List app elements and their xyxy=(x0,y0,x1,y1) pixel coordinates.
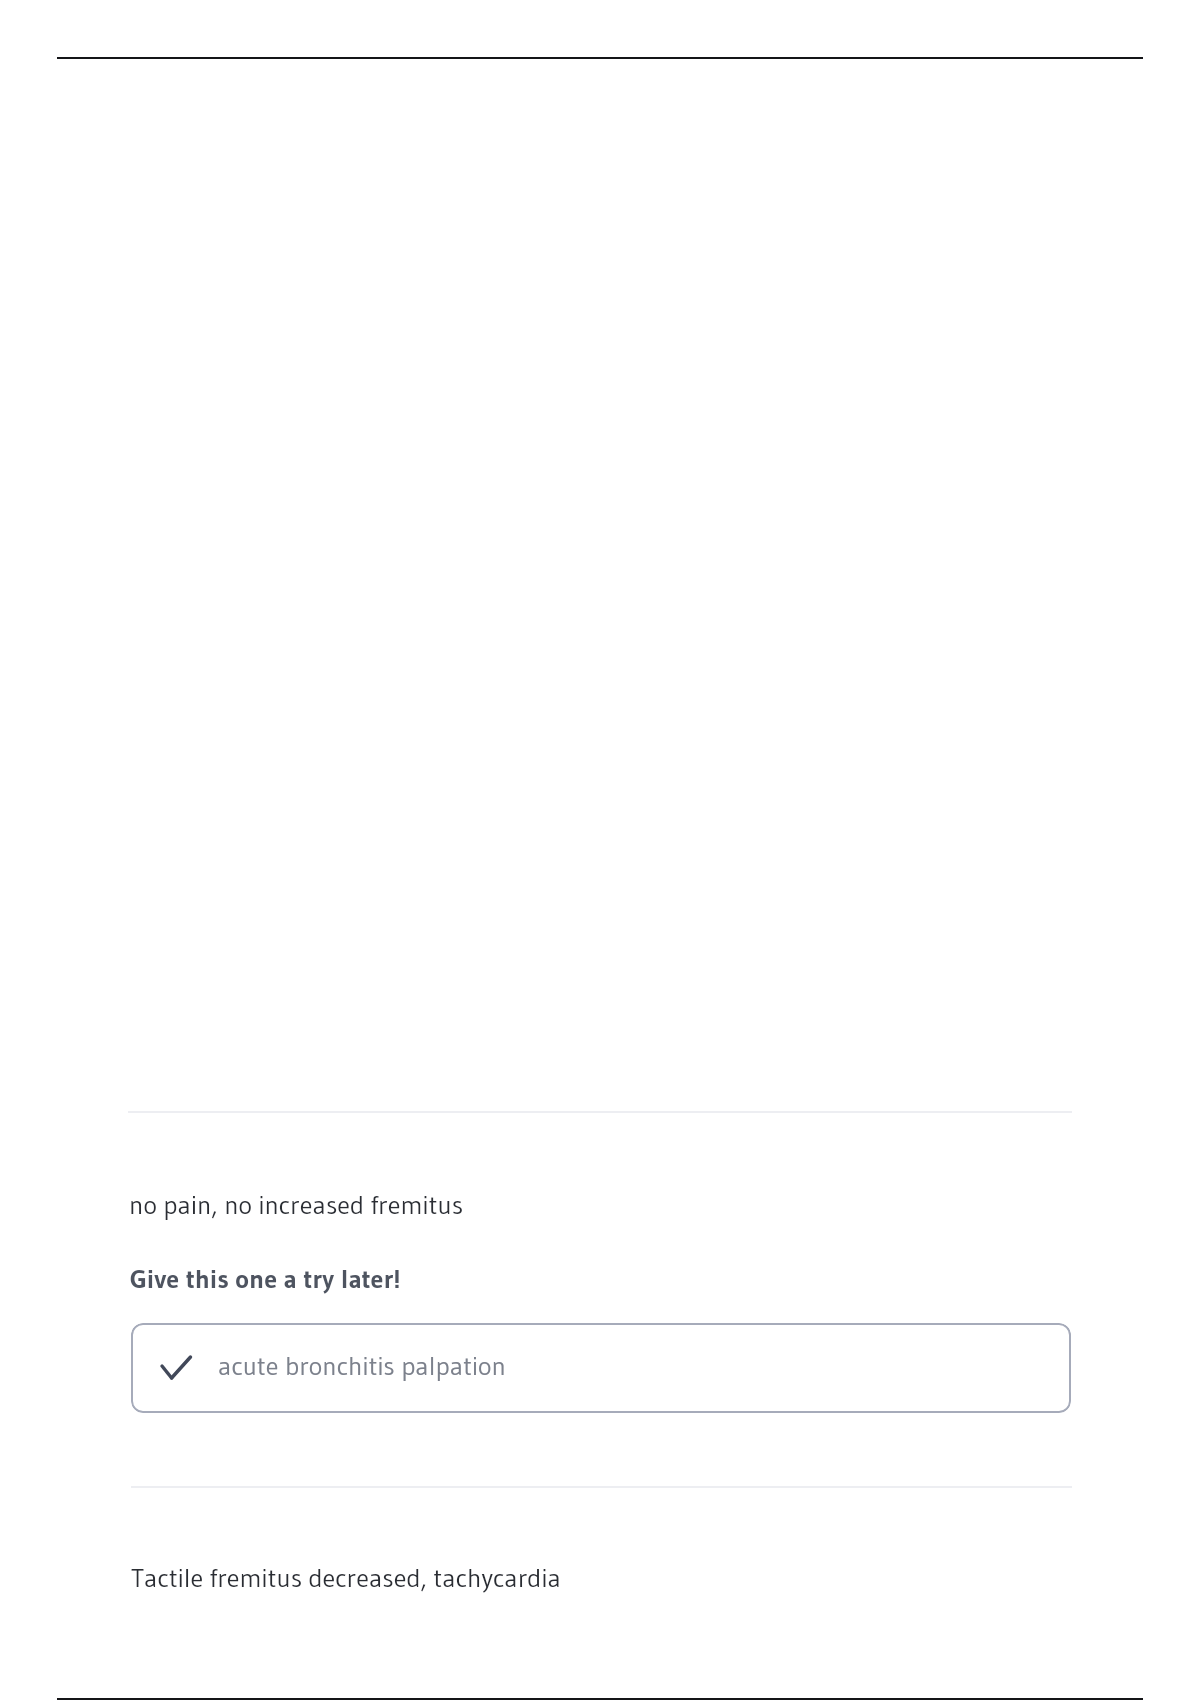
staticText: no pain, no increased fremitus xyxy=(129,1189,463,1221)
other: Answered correctly xyxy=(162,1355,192,1380)
button[interactable]: Answered correctly xyxy=(131,1323,1071,1413)
staticText: acute bronchitis palpation xyxy=(218,1350,506,1382)
staticText: Tactile fremitus decreased, tachycardia xyxy=(131,1562,561,1594)
staticText: Give this one a try later! xyxy=(130,1263,401,1295)
